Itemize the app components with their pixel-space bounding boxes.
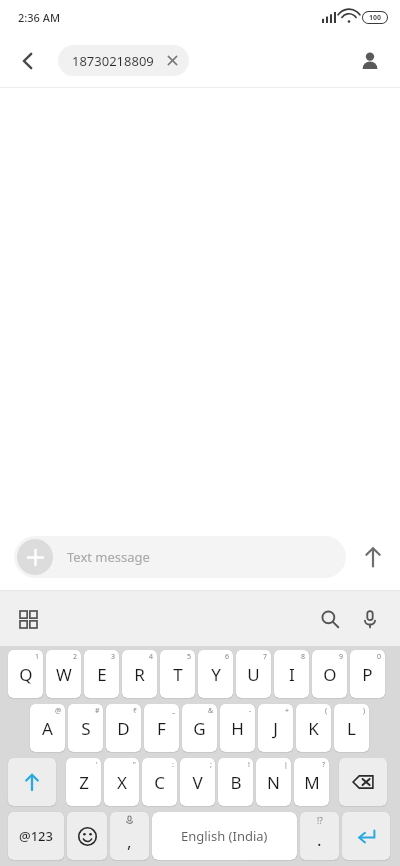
button[interactable]: Backspace [339, 758, 387, 806]
staticText: 5 [187, 652, 192, 662]
staticText: - [249, 706, 252, 716]
staticText: 3 [111, 652, 116, 662]
staticText: C [154, 771, 165, 794]
staticText: 7 [263, 652, 268, 662]
button[interactable]: Keyboard menu [8, 599, 48, 639]
button[interactable]: Shift [8, 758, 56, 806]
staticText: 2 [73, 652, 78, 662]
staticText: U [247, 663, 260, 686]
staticText: M [304, 771, 320, 794]
button[interactable]: C [142, 758, 177, 806]
button[interactable]: Comma [110, 812, 149, 860]
staticText: I [289, 663, 295, 686]
button[interactable]: K [296, 704, 331, 752]
staticText: 1 [35, 652, 40, 662]
staticText: V [192, 771, 203, 794]
button[interactable]: U [236, 650, 271, 698]
staticText: 18730218809 [72, 52, 154, 70]
button[interactable]: Z [66, 758, 101, 806]
staticText: _ [172, 706, 176, 716]
staticText: ₹ [133, 706, 138, 716]
staticText: : [172, 760, 174, 770]
staticText: | [284, 760, 288, 770]
button[interactable]: N [256, 758, 291, 806]
staticText: , [127, 830, 132, 853]
staticText: ! [248, 760, 250, 770]
staticText: O [323, 663, 337, 686]
button[interactable]: M [294, 758, 329, 806]
staticText: 2:36 AM [18, 10, 61, 25]
staticText: @ [55, 706, 62, 716]
button[interactable]: 18730218809 [58, 45, 189, 76]
button[interactable]: P [350, 650, 385, 698]
button[interactable]: J [258, 704, 293, 752]
staticText: E [97, 663, 107, 686]
staticText: S [81, 717, 91, 740]
staticText: ' [96, 760, 98, 770]
button[interactable]: Search [310, 599, 350, 639]
button[interactable]: Emoji [67, 812, 107, 860]
button[interactable]: D [106, 704, 141, 752]
staticText: 9 [339, 652, 344, 662]
button[interactable]: Symbols [8, 812, 64, 860]
staticText: N [267, 771, 280, 794]
staticText: F [157, 717, 166, 740]
button[interactable]: V [180, 758, 215, 806]
staticText: D [117, 717, 130, 740]
staticText: 100 [369, 13, 382, 23]
staticText: @123 [19, 827, 53, 845]
button[interactable]: Y [198, 650, 233, 698]
button[interactable]: Enter [342, 812, 390, 860]
staticText: B [230, 771, 242, 794]
staticText: A [42, 717, 53, 740]
button[interactable]: Contact details [350, 41, 390, 81]
staticText: H [231, 717, 244, 740]
staticText: ( [325, 706, 328, 716]
button[interactable]: Send [346, 530, 400, 584]
staticText: ? [322, 760, 326, 770]
button[interactable]: Add attachment [14, 536, 346, 578]
button[interactable]: A [30, 704, 65, 752]
staticText: T [173, 663, 183, 686]
button[interactable]: I [274, 650, 309, 698]
button[interactable]: English (India) [152, 812, 297, 860]
button[interactable]: Q [8, 650, 43, 698]
staticText: L [347, 717, 356, 740]
button[interactable]: Add attachment [17, 539, 53, 575]
staticText: Y [211, 663, 221, 686]
staticText: ; [210, 760, 212, 770]
staticText: 0 [377, 652, 382, 662]
button[interactable]: S [68, 704, 103, 752]
button[interactable]: L [334, 704, 369, 752]
staticText: English (India) [181, 827, 268, 845]
button[interactable]: W [46, 650, 81, 698]
staticText: & [208, 706, 214, 716]
staticText: K [308, 717, 319, 740]
button[interactable]: F [144, 704, 179, 752]
button[interactable]: Period [300, 812, 339, 860]
staticText: ) [363, 706, 366, 716]
staticText: P [362, 663, 373, 686]
button[interactable]: E [84, 650, 119, 698]
staticText: + [285, 706, 290, 716]
staticText: !? [317, 815, 323, 826]
button[interactable]: H [220, 704, 255, 752]
staticText: X [117, 771, 127, 794]
staticText: G [193, 717, 206, 740]
staticText: # [95, 706, 100, 716]
button[interactable]: T [160, 650, 195, 698]
button[interactable]: O [312, 650, 347, 698]
button[interactable]: R [122, 650, 157, 698]
staticText: W [56, 663, 72, 686]
staticText: Q [19, 663, 33, 686]
staticText: Text message [67, 548, 150, 566]
button[interactable]: B [218, 758, 253, 806]
staticText: 8 [301, 652, 306, 662]
button[interactable]: Back [8, 41, 48, 81]
button[interactable]: Voice input [350, 599, 390, 639]
staticText: 4 [149, 652, 154, 662]
button[interactable]: G [182, 704, 217, 752]
staticText: J [273, 717, 278, 740]
staticText: " [133, 760, 136, 770]
button[interactable]: X [104, 758, 139, 806]
